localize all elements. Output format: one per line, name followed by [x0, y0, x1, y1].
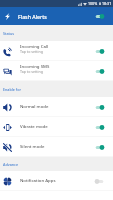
button[interactable]: Enable flash alerts: [94, 11, 105, 22]
staticText: Notification Apps: [20, 177, 56, 183]
staticText: Advance: [3, 162, 18, 167]
button[interactable]: Flash Alerts: [4, 10, 11, 23]
button[interactable]: Silent mode: [0, 137, 113, 157]
button[interactable]: Normal mode: [0, 97, 113, 117]
other: Silent mode: [94, 142, 105, 153]
other: Vibrate mode: [94, 122, 105, 133]
staticText: Enable for: [3, 87, 21, 92]
other: Normal mode: [94, 102, 105, 113]
staticText: Tap to setting: [20, 49, 43, 54]
other: Incoming SMS: [94, 66, 105, 77]
staticText: 18:31: [102, 1, 112, 6]
staticText: Flash Alerts: [18, 13, 47, 20]
staticText: Vibrate mode: [20, 123, 48, 129]
other: Incoming Call: [94, 46, 105, 57]
button[interactable]: Incoming Call: [0, 41, 113, 61]
staticText: 100%: [88, 1, 98, 6]
button[interactable]: Vibrate mode: [0, 117, 113, 137]
staticText: Tap to setting: [20, 69, 43, 74]
staticText: Incoming Call: [20, 43, 49, 49]
staticText: Status: [3, 31, 15, 36]
other: Notification Apps: [94, 176, 105, 187]
staticText: Silent mode: [20, 143, 45, 149]
staticText: Normal mode: [20, 103, 49, 109]
button[interactable]: Notification Apps: [0, 171, 113, 191]
staticText: Incoming SMS: [20, 63, 50, 69]
button[interactable]: Incoming SMS: [0, 61, 113, 81]
